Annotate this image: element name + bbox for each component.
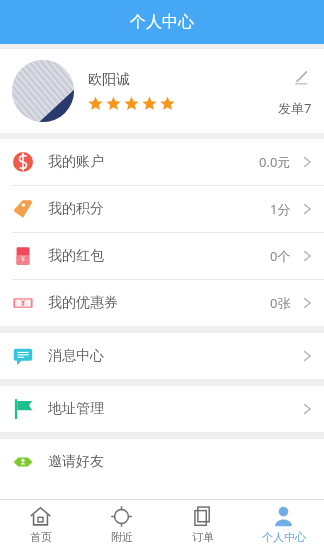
button[interactable]: 个人中心 xyxy=(243,500,324,550)
button[interactable]: 我的优惠券 xyxy=(0,280,324,326)
staticText: 我的积分 xyxy=(48,200,104,218)
button[interactable]: 我的红包 xyxy=(0,233,324,279)
staticText: 我的账户 xyxy=(48,153,104,171)
staticText: 订单 xyxy=(192,530,214,544)
staticText: 0张 xyxy=(270,294,291,312)
staticText: 首页 xyxy=(30,530,52,544)
staticText: 1分 xyxy=(270,200,291,218)
staticText: 地址管理 xyxy=(48,400,104,418)
button[interactable]: 我的积分 xyxy=(0,186,324,232)
staticText: 发单7 xyxy=(278,99,312,117)
staticText: 0.0元 xyxy=(259,153,291,171)
button[interactable]: 欧阳诚 xyxy=(0,49,324,133)
button[interactable]: 消息中心 xyxy=(0,333,324,379)
staticText: 邀请好友 xyxy=(48,453,104,471)
button[interactable]: 首页 xyxy=(0,500,81,550)
button[interactable]: 地址管理 xyxy=(0,386,324,432)
staticText: 欧阳诚 xyxy=(88,71,130,89)
button[interactable]: 附近 xyxy=(81,500,162,550)
staticText: 我的红包 xyxy=(48,247,104,265)
staticText: 0个 xyxy=(270,247,291,265)
button[interactable]: 邀请好友 xyxy=(0,439,324,485)
staticText: 个人中心 xyxy=(262,530,306,544)
button[interactable]: Edit profile xyxy=(290,65,312,87)
staticText: 附近 xyxy=(111,530,133,544)
staticText: 我的优惠券 xyxy=(48,294,118,312)
staticText: 消息中心 xyxy=(48,347,104,365)
staticText: 个人中心 xyxy=(130,12,194,32)
button[interactable]: 我的账户 xyxy=(0,139,324,185)
button[interactable]: 订单 xyxy=(162,500,243,550)
